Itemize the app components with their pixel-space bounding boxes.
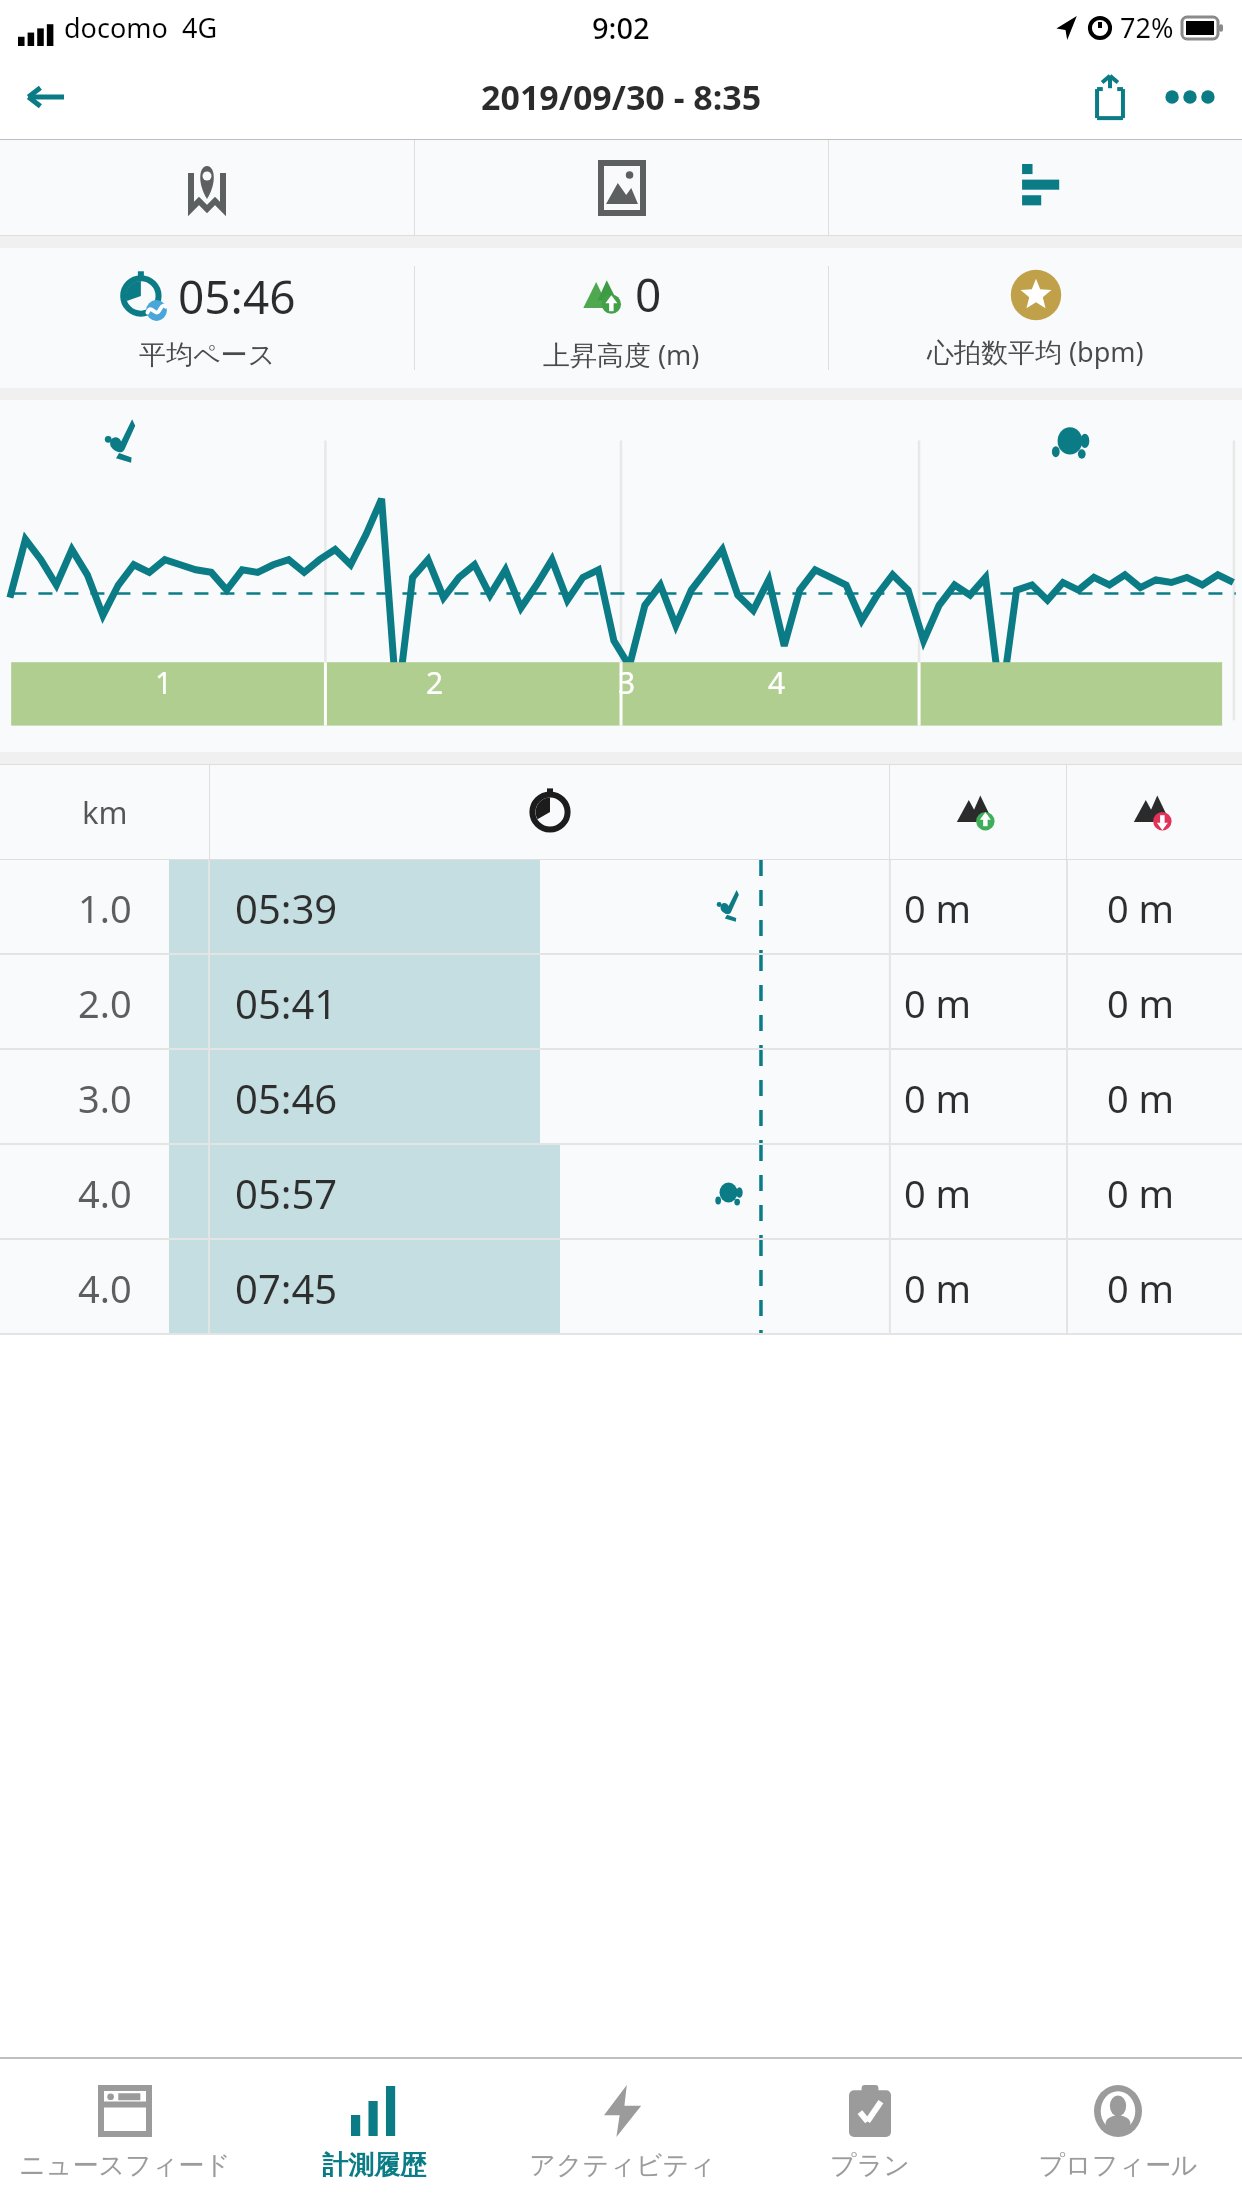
staticText: プロフィール <box>1038 2149 1198 2182</box>
staticText: 0 m <box>1107 882 1175 934</box>
button[interactable]: プラン <box>746 2057 994 2208</box>
button[interactable]: 0 <box>415 248 828 388</box>
staticText: 07:45 <box>235 1261 338 1315</box>
button[interactable]: Photos <box>415 140 828 235</box>
staticText: ニュースフィード <box>19 2149 231 2182</box>
staticText: km <box>82 791 128 833</box>
staticText: 0 m <box>1107 1262 1175 1314</box>
button[interactable]: 4.0 <box>0 1240 1242 1335</box>
staticText: 2019/09/30 - 8:35 <box>481 74 762 120</box>
staticText: 05:39 <box>235 881 338 935</box>
staticText: 心拍数平均 (bpm) <box>927 333 1144 370</box>
staticText: 2.0 <box>78 977 132 1029</box>
staticText: 3.0 <box>78 1072 132 1124</box>
staticText: 1 <box>155 662 173 702</box>
staticText: アクティビティ <box>529 2149 716 2182</box>
staticText: 0 m <box>904 1072 972 1124</box>
staticText: 72% <box>1120 9 1174 46</box>
staticText: 9:02 <box>592 8 650 47</box>
button[interactable]: 2.0 <box>0 955 1242 1050</box>
button[interactable]: Statistics <box>829 140 1242 235</box>
staticText: 3 <box>618 662 636 702</box>
staticText: 4G <box>182 9 218 46</box>
button[interactable]: Back <box>10 61 82 133</box>
staticText: 05:41 <box>235 976 338 1030</box>
button[interactable]: 05:46 <box>0 248 414 388</box>
staticText: 0 <box>635 263 662 326</box>
staticText: 計測履歴 <box>322 2149 426 2182</box>
staticText: 4 <box>768 662 786 702</box>
staticText: 0 m <box>1107 977 1175 1029</box>
staticText: プラン <box>830 2149 910 2182</box>
staticText: 05:57 <box>235 1166 338 1220</box>
button[interactable]: 心拍数平均 (bpm) <box>829 248 1242 388</box>
staticText: docomo <box>64 9 168 46</box>
button[interactable]: Map <box>0 140 414 235</box>
staticText: 1.0 <box>78 882 132 934</box>
button[interactable]: Share <box>1070 57 1150 137</box>
button[interactable]: 4.0 <box>0 1145 1242 1240</box>
staticText: 0 m <box>904 1167 972 1219</box>
button[interactable]: アクティビティ <box>498 2057 746 2208</box>
staticText: 0 m <box>904 1262 972 1314</box>
button[interactable]: 3.0 <box>0 1050 1242 1145</box>
staticText: 05:46 <box>178 265 296 328</box>
button[interactable]: More options <box>1150 57 1230 137</box>
staticText: 0 m <box>904 977 972 1029</box>
button[interactable]: 1.0 <box>0 860 1242 955</box>
button[interactable]: プロフィール <box>994 2057 1242 2208</box>
staticText: 2 <box>426 662 444 702</box>
staticText: 05:46 <box>235 1071 338 1125</box>
staticText: 平均ペース <box>139 338 276 372</box>
button[interactable]: ニュースフィード <box>0 2057 249 2208</box>
staticText: 上昇高度 (m) <box>543 336 700 373</box>
staticText: 0 m <box>1107 1167 1175 1219</box>
staticText: 0 m <box>1107 1072 1175 1124</box>
staticText: 4.0 <box>78 1262 132 1314</box>
staticText: 0 m <box>904 882 972 934</box>
button[interactable]: 計測履歴 <box>249 2057 498 2208</box>
staticText: 4.0 <box>78 1167 132 1219</box>
